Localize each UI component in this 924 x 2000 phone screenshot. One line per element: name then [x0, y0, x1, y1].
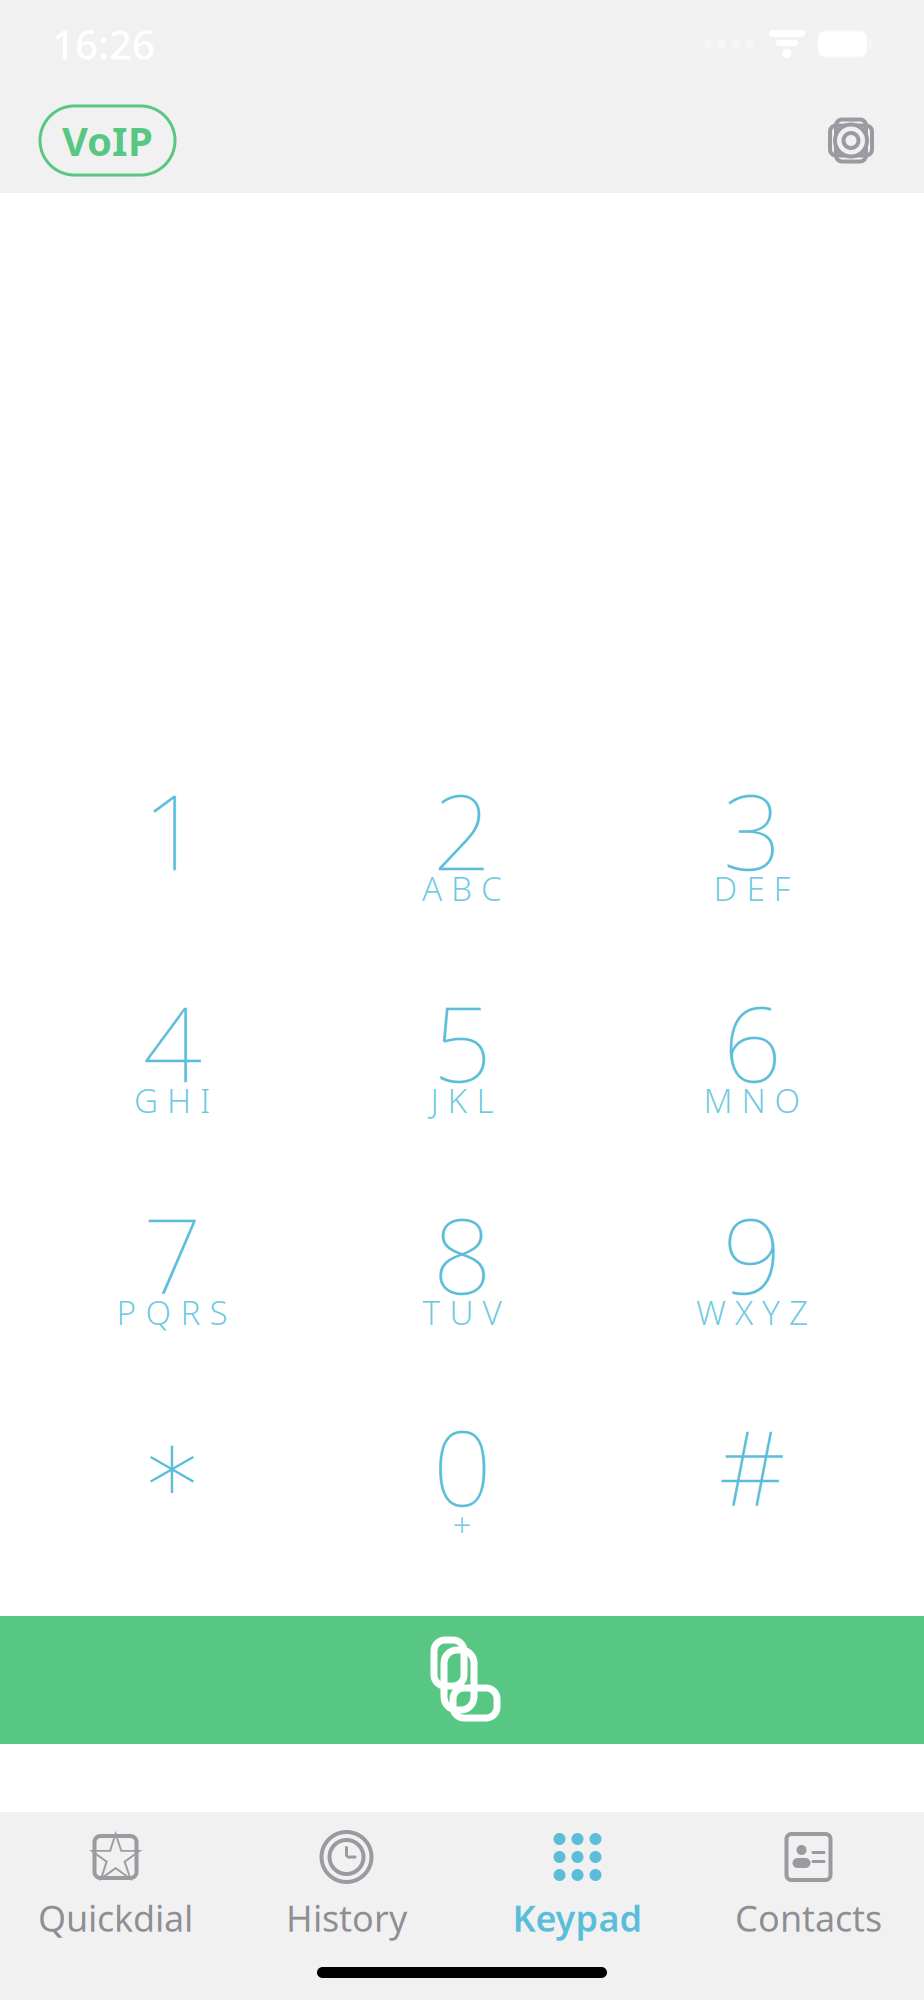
staticText: 9 — [722, 1185, 781, 1323]
staticText: 1 — [142, 761, 201, 899]
staticText: # — [718, 1397, 785, 1535]
staticText: W X Y Z — [696, 1290, 808, 1334]
button[interactable]: ☆ — [0, 1812, 231, 1942]
button[interactable]: Call — [0, 1616, 924, 1744]
button[interactable]: History — [231, 1812, 462, 1942]
staticText: T U V — [422, 1290, 501, 1334]
staticText: 16:26 — [52, 17, 155, 70]
staticText: Keypad — [512, 1894, 642, 1942]
button[interactable]: Contacts — [693, 1812, 924, 1942]
button[interactable]: # — [607, 1406, 897, 1556]
button[interactable]: ∗ — [27, 1406, 317, 1556]
staticText: Contacts — [735, 1894, 882, 1942]
staticText: VoIP — [62, 114, 153, 167]
button[interactable]: 7 — [27, 1194, 317, 1344]
button[interactable]: 8 — [317, 1194, 607, 1344]
staticText: 5 — [432, 973, 491, 1111]
button[interactable]: Keypad — [462, 1812, 693, 1942]
staticText: J K L — [430, 1078, 493, 1122]
button[interactable]: 2 — [317, 770, 607, 920]
staticText: M N O — [703, 1078, 800, 1122]
button[interactable]: 0 — [317, 1406, 607, 1556]
staticText: A B C — [422, 866, 502, 910]
staticText: 2 — [432, 761, 491, 899]
staticText: ∗ — [139, 1407, 204, 1525]
staticText: 6 — [722, 973, 781, 1111]
staticText: 7 — [142, 1185, 201, 1323]
staticText: Quickdial — [38, 1894, 193, 1942]
staticText: 4 — [142, 973, 201, 1111]
button[interactable]: 3 — [607, 770, 897, 920]
staticText: History — [286, 1894, 407, 1942]
button[interactable]: Settings — [818, 107, 884, 173]
staticText: 0 — [432, 1397, 491, 1535]
staticText: 3 — [722, 761, 781, 899]
staticText: G H I — [134, 1078, 210, 1122]
button[interactable]: 6 — [607, 982, 897, 1132]
staticText: D E F — [713, 866, 790, 910]
staticText: ☆ — [84, 1818, 146, 1896]
button[interactable]: 5 — [317, 982, 607, 1132]
button[interactable]: 9 — [607, 1194, 897, 1344]
staticText: + — [452, 1502, 471, 1546]
staticText: P Q R S — [116, 1290, 227, 1334]
button[interactable]: VoIP — [40, 106, 175, 175]
staticText: 8 — [432, 1185, 491, 1323]
button[interactable]: 4 — [27, 982, 317, 1132]
button[interactable]: 1 — [27, 770, 317, 920]
